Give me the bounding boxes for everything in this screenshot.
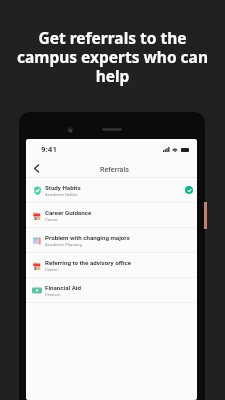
staticText: Referrals (100, 165, 130, 173)
staticText: Study Habits (45, 184, 81, 191)
button[interactable]: Problem with changing majors (26, 228, 197, 252)
staticText: Referring to the advisory office (45, 259, 132, 266)
button[interactable]: Study Habits (26, 178, 197, 202)
staticText: Financial Aid (45, 284, 81, 291)
staticText: Academic Habits (45, 192, 78, 197)
staticText: Career (45, 217, 58, 222)
button[interactable]: Referring to the advisory office (26, 253, 197, 277)
button[interactable]: Back (28, 160, 44, 176)
button[interactable]: Career Guidance (26, 203, 197, 227)
staticText: Get referrals to the campus experts who … (13, 27, 212, 86)
staticText: Career Guidance (45, 209, 92, 216)
staticText: Career (45, 267, 58, 272)
button[interactable]: Financial Aid (26, 278, 197, 302)
staticText: Problem with changing majors (45, 234, 130, 241)
staticText: Academic Planning (45, 242, 82, 247)
staticText: 9:41 (41, 145, 58, 154)
staticText: Finance (45, 292, 61, 297)
